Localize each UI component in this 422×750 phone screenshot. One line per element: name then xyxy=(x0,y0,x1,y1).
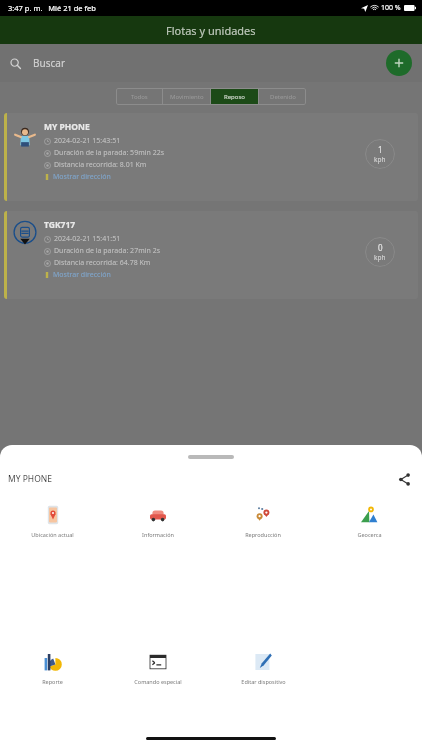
button[interactable]: MY PHONE xyxy=(4,113,418,201)
staticText: Reproducción xyxy=(245,531,281,538)
button[interactable]: Comando especial xyxy=(105,650,210,687)
button[interactable]: Reporte xyxy=(0,650,105,687)
staticText: 2024-02-21 15:41:51 xyxy=(54,234,121,244)
staticText: Reposo xyxy=(224,93,245,101)
staticText: 0 xyxy=(378,242,383,253)
button[interactable]: Reproducción xyxy=(210,503,316,540)
button[interactable]: Compartir xyxy=(394,469,414,489)
button[interactable]: Información xyxy=(105,503,210,540)
staticText: 2024-02-21 15:43:51 xyxy=(54,136,121,146)
staticText: Buscar xyxy=(33,56,66,70)
staticText: Reporte xyxy=(42,678,63,685)
staticText: kph xyxy=(374,253,386,262)
button[interactable]: Detenido xyxy=(259,88,306,105)
button[interactable]: Todos xyxy=(116,88,162,105)
staticText: Duración de la parada: 59min 22s xyxy=(54,148,164,158)
staticText: Ubicación actual xyxy=(31,531,74,538)
staticText: Distancia recorrida: 8.01 Km xyxy=(54,160,147,170)
button[interactable]: Movimiento xyxy=(163,88,210,105)
staticText: Detenido xyxy=(270,93,296,101)
button[interactable]: Ubicación actual xyxy=(0,503,105,540)
button[interactable]: Reposo xyxy=(211,88,258,105)
button[interactable]: Geocerca xyxy=(316,503,422,540)
staticText: 3:47 p. m. Mié 21 de feb xyxy=(8,3,96,13)
staticText: Editar dispositivo xyxy=(241,678,286,685)
button[interactable]: Editar dispositivo xyxy=(210,650,316,687)
staticText: TGK717 xyxy=(44,219,76,231)
button[interactable]: Mostrar dirección xyxy=(53,270,111,280)
button[interactable]: Buscar xyxy=(10,48,378,78)
staticText: Movimiento xyxy=(170,93,204,101)
staticText: Flotas y unidades xyxy=(166,23,256,38)
staticText: Comando especial xyxy=(134,678,182,685)
other: Buscar xyxy=(10,58,21,69)
staticText: Información xyxy=(142,531,174,538)
button[interactable]: Agregar xyxy=(386,50,412,76)
staticText: 100 % xyxy=(381,3,401,13)
staticText: 1 xyxy=(378,144,383,155)
staticText: Geocerca xyxy=(357,531,382,538)
staticText: Duración de la parada: 27min 2s xyxy=(54,246,160,256)
staticText: MY PHONE xyxy=(8,473,52,485)
button[interactable]: TGK717 xyxy=(4,211,418,299)
button[interactable]: Mostrar dirección xyxy=(53,172,111,182)
staticText: kph xyxy=(374,155,386,164)
staticText: Distancia recorrida: 64.78 Km xyxy=(54,258,151,268)
staticText: Todos xyxy=(131,93,148,101)
staticText: MY PHONE xyxy=(44,121,90,133)
